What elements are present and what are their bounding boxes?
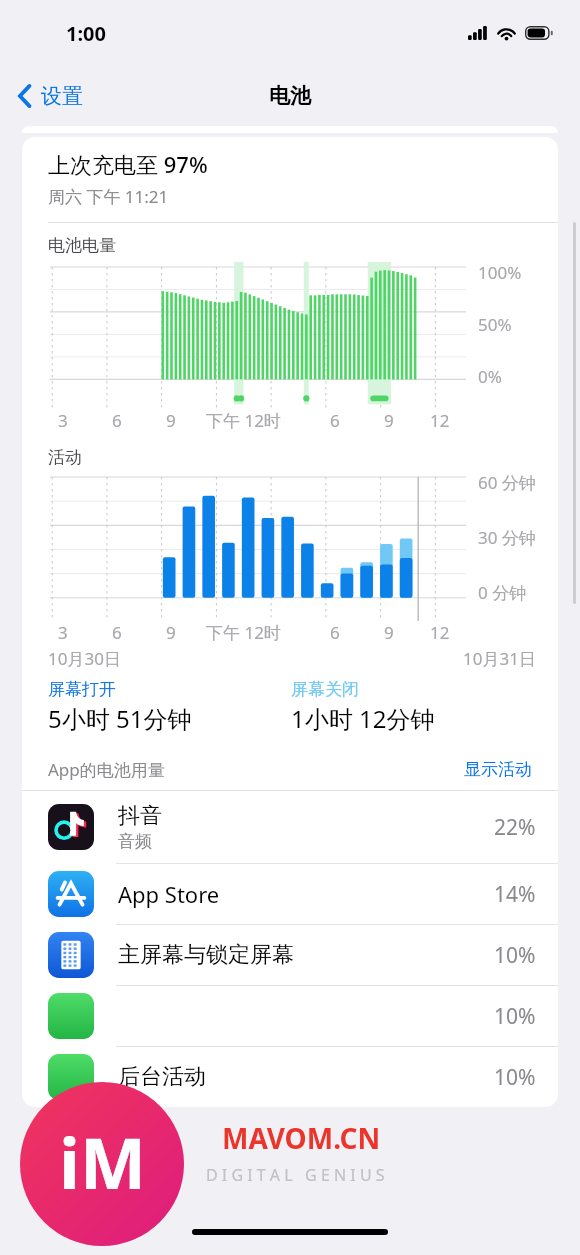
staticText: 下午 12时 bbox=[206, 409, 281, 432]
staticText: 5小时 51分钟 bbox=[48, 702, 192, 735]
other: App icon bbox=[48, 932, 94, 978]
staticText: MAVOM.CN bbox=[222, 1119, 381, 1157]
staticText: 屏幕关闭 bbox=[291, 679, 359, 700]
other: App icon bbox=[48, 993, 94, 1039]
staticText: 12 bbox=[430, 409, 450, 432]
staticText: 10% bbox=[494, 1002, 536, 1031]
staticText: 0% bbox=[478, 365, 502, 388]
staticText: App Store bbox=[118, 879, 220, 909]
staticText: 10月31日 bbox=[463, 647, 536, 670]
staticText: 电池 bbox=[269, 83, 311, 109]
staticText: iM bbox=[59, 1114, 146, 1209]
staticText: 9 bbox=[384, 621, 394, 644]
staticText: 主屏幕与锁定屏幕 bbox=[118, 941, 294, 969]
staticText: 设置 bbox=[41, 83, 83, 109]
button[interactable]: 显示活动 bbox=[460, 755, 536, 784]
other: App icon bbox=[48, 1054, 94, 1100]
staticText: 6 bbox=[112, 409, 122, 432]
staticText: 周六 下午 11:21 bbox=[48, 185, 169, 208]
button[interactable]: App icon bbox=[22, 1047, 558, 1107]
staticText: 10% bbox=[494, 1063, 536, 1092]
staticText: 活动 bbox=[48, 447, 82, 468]
staticText: 100% bbox=[478, 261, 522, 284]
staticText: 14% bbox=[494, 880, 536, 909]
staticText: 6 bbox=[330, 621, 340, 644]
staticText: D I G I T A L G E N I U S bbox=[206, 1164, 385, 1186]
staticText: 1小时 12分钟 bbox=[291, 702, 435, 735]
staticText: 屏幕打开 bbox=[48, 679, 116, 700]
staticText: 6 bbox=[330, 409, 340, 432]
staticText: 9 bbox=[384, 409, 394, 432]
staticText: 电池电量 bbox=[48, 235, 116, 256]
staticText: 50% bbox=[478, 313, 512, 336]
staticText: 22% bbox=[494, 813, 536, 842]
staticText: 9 bbox=[166, 409, 176, 432]
staticText: 音频 bbox=[118, 831, 152, 852]
staticText: 9 bbox=[166, 621, 176, 644]
staticText: 0 分钟 bbox=[478, 581, 527, 604]
button[interactable]: App icon bbox=[22, 986, 558, 1046]
staticText: App的电池用量 bbox=[48, 758, 165, 781]
staticText: 60 分钟 bbox=[478, 471, 536, 494]
button[interactable]: App icon bbox=[22, 791, 558, 863]
button[interactable]: App icon bbox=[22, 925, 558, 985]
button[interactable]: App icon bbox=[22, 864, 558, 924]
other: App icon bbox=[48, 871, 94, 917]
staticText: 显示活动 bbox=[464, 759, 532, 780]
staticText: 12 bbox=[430, 621, 450, 644]
staticText: 10% bbox=[494, 941, 536, 970]
staticText: 3 bbox=[58, 409, 68, 432]
staticText: 上次充电至 97% bbox=[48, 149, 208, 179]
staticText: 下午 12时 bbox=[206, 621, 281, 644]
button[interactable]: 设置 bbox=[12, 75, 89, 117]
other: App icon bbox=[48, 804, 94, 850]
staticText: 30 分钟 bbox=[478, 526, 536, 549]
staticText: 后台活动 bbox=[118, 1063, 206, 1091]
staticText: 3 bbox=[58, 621, 68, 644]
staticText: 1:00 bbox=[66, 20, 106, 47]
staticText: 抖音 bbox=[118, 802, 162, 830]
staticText: 10月30日 bbox=[48, 647, 121, 670]
staticText: 6 bbox=[112, 621, 122, 644]
